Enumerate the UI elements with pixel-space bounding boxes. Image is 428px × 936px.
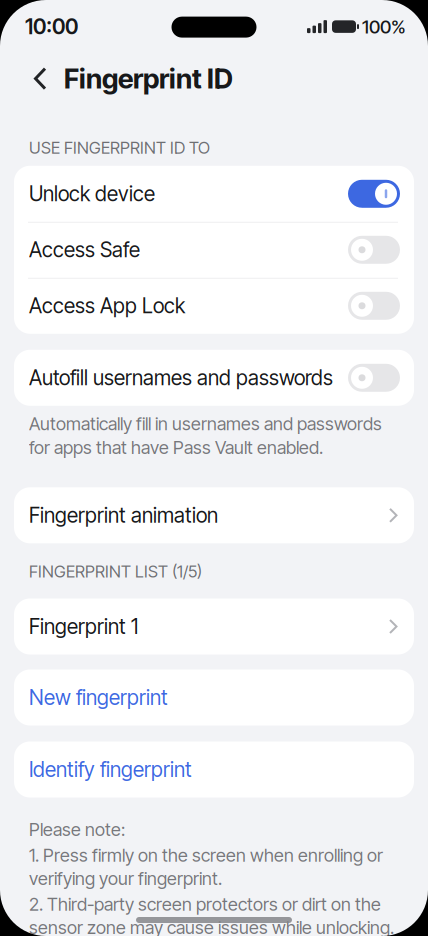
- staticText: Fingerprint 1: [29, 614, 138, 639]
- staticText: New fingerprint: [29, 685, 168, 710]
- button[interactable]: Unlock device: [14, 166, 414, 222]
- button[interactable]: Back: [34, 67, 47, 90]
- button[interactable]: Identify fingerprint: [14, 741, 414, 797]
- staticText: 100%: [362, 15, 406, 38]
- staticText: Unlock device: [29, 181, 155, 206]
- staticText: Fingerprint ID: [64, 62, 233, 95]
- staticText: FINGERPRINT LIST (1/5): [29, 561, 202, 581]
- staticText: Automatically fill in usernames and pass…: [29, 413, 382, 458]
- button[interactable]: Access Safe: [14, 222, 414, 278]
- button[interactable]: Fingerprint 1: [14, 598, 414, 654]
- staticText: USE FINGERPRINT ID TO: [29, 138, 210, 158]
- staticText: Fingerprint animation: [29, 503, 218, 528]
- staticText: Autofill usernames and passwords: [29, 365, 333, 390]
- staticText: Access App Lock: [29, 293, 185, 318]
- button[interactable]: Fingerprint animation: [14, 487, 414, 543]
- staticText: 1. Press firmly on the screen when enrol…: [29, 844, 383, 889]
- staticText: 10:00: [25, 14, 78, 39]
- button[interactable]: Access App Lock: [14, 278, 414, 334]
- button[interactable]: Autofill usernames and passwords: [14, 350, 414, 406]
- staticText: Please note:: [29, 818, 125, 840]
- staticText: 2. Third-party screen protectors or dirt…: [29, 893, 394, 936]
- staticText: Identify fingerprint: [29, 757, 192, 782]
- button[interactable]: New fingerprint: [14, 669, 414, 725]
- staticText: Access Safe: [29, 237, 140, 262]
